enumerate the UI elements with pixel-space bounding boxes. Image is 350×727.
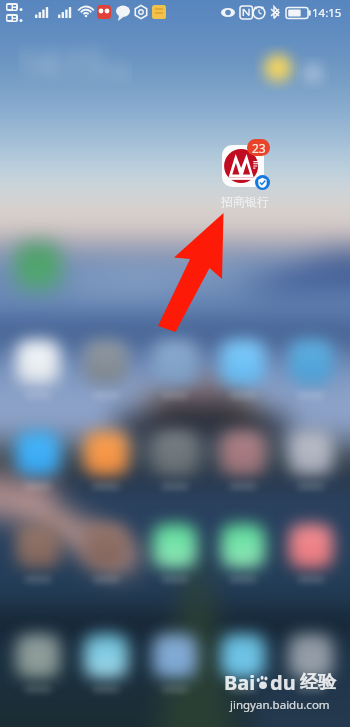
button[interactable]: [289, 634, 333, 678]
button[interactable]: [84, 431, 128, 475]
button[interactable]: [221, 634, 265, 678]
button[interactable]: [153, 431, 197, 475]
button[interactable]: [84, 634, 128, 678]
button[interactable]: [153, 524, 197, 568]
button[interactable]: [15, 243, 61, 289]
button[interactable]: [16, 524, 60, 568]
other: 指示箭头: [0, 0, 350, 727]
staticText: 经验: [300, 671, 336, 694]
button[interactable]: [84, 524, 128, 568]
button[interactable]: [221, 340, 265, 384]
button[interactable]: [153, 634, 197, 678]
button[interactable]: [289, 524, 333, 568]
button[interactable]: [289, 431, 333, 475]
button[interactable]: [84, 340, 128, 384]
staticText: 招商银行: [204, 194, 286, 209]
staticText: 14:15: [18, 40, 104, 86]
staticText: Bai: [224, 669, 256, 696]
staticText: du: [270, 669, 296, 696]
button[interactable]: [221, 431, 265, 475]
staticText: 23: [252, 140, 266, 156]
staticText: jingyan.baidu.com: [230, 697, 330, 713]
button[interactable]: [16, 634, 60, 678]
button[interactable]: [221, 524, 265, 568]
button[interactable]: [153, 340, 197, 384]
button[interactable]: [16, 431, 60, 475]
button[interactable]: [289, 340, 333, 384]
staticText: 14:15: [312, 5, 342, 21]
button[interactable]: [16, 340, 60, 384]
button[interactable]: 招商银行 app: [218, 136, 270, 192]
